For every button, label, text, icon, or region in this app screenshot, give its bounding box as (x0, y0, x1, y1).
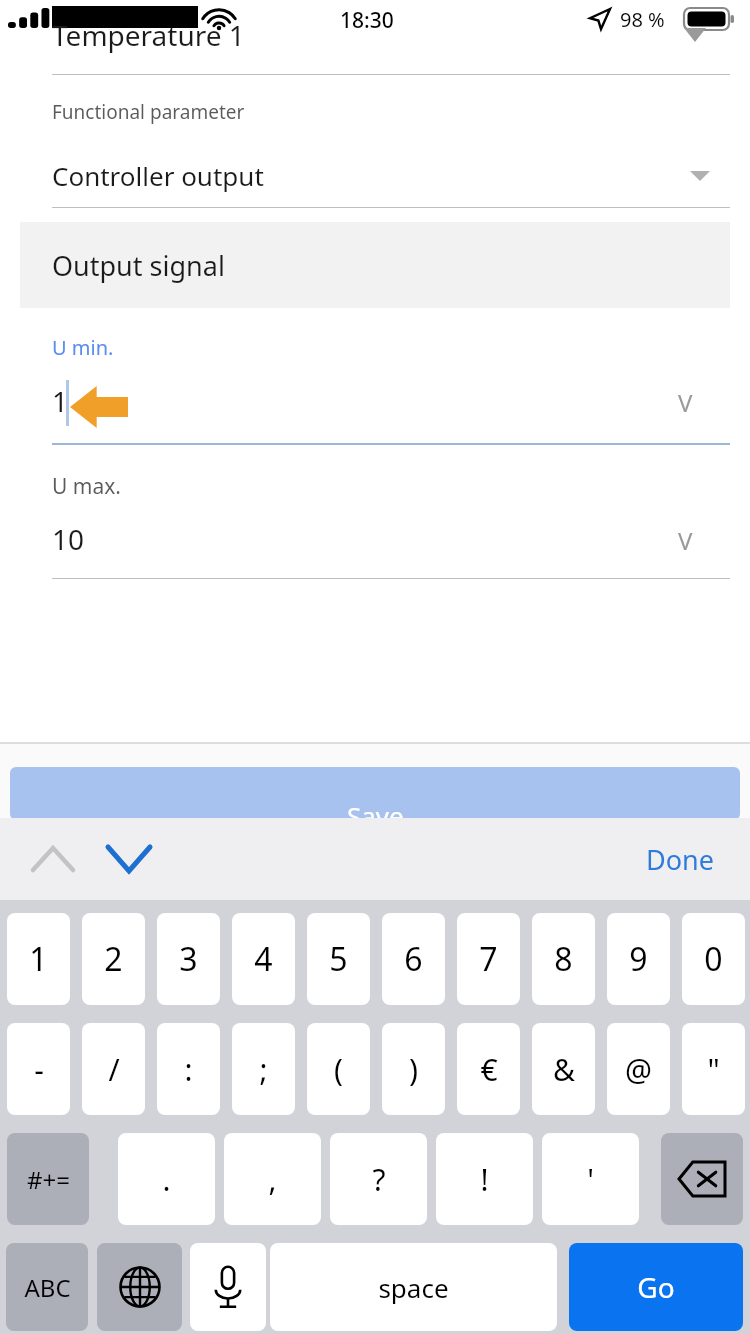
staticText: Done (646, 841, 714, 878)
staticText: 3 (179, 937, 198, 981)
button[interactable]: 9 (607, 913, 670, 1005)
button[interactable]: : (157, 1023, 220, 1115)
staticText: Output signal (52, 247, 225, 284)
button[interactable]: ; (232, 1023, 295, 1115)
button[interactable]: - (7, 1023, 70, 1115)
button[interactable]: #+= (7, 1133, 89, 1225)
button[interactable]: / (82, 1023, 145, 1115)
button[interactable]: 4 (232, 913, 295, 1005)
staticText: Controller output (52, 158, 264, 193)
staticText: 0 (704, 937, 723, 981)
button[interactable]: Go (569, 1243, 743, 1331)
staticText: - (34, 1049, 44, 1090)
staticText: 6 (404, 937, 423, 981)
button[interactable]: 5 (307, 913, 370, 1005)
staticText: V (678, 524, 693, 557)
staticText: " (707, 1049, 720, 1090)
button[interactable]: 6 (382, 913, 445, 1005)
button[interactable]: ) (382, 1023, 445, 1115)
button[interactable]: Previous field (18, 830, 88, 888)
staticText: Temperature 1 (52, 16, 245, 54)
staticText: 98 % (620, 6, 665, 33)
button[interactable]: ( (307, 1023, 370, 1115)
staticText: ) (409, 1049, 418, 1090)
staticText: 5 (329, 937, 348, 981)
staticText: 4 (254, 937, 273, 981)
button[interactable]: , (224, 1133, 321, 1225)
button[interactable]: @ (607, 1023, 670, 1115)
staticText: 9 (629, 937, 648, 981)
staticText: U max. (52, 472, 121, 501)
button[interactable]: Controller output (0, 150, 750, 200)
staticText: ? (372, 1159, 386, 1200)
button[interactable]: ABC (6, 1243, 88, 1331)
staticText: ( (334, 1049, 343, 1090)
staticText: & (553, 1049, 575, 1090)
button[interactable]: 2 (82, 913, 145, 1005)
button[interactable]: " (682, 1023, 745, 1115)
staticText: ! (480, 1159, 489, 1200)
button[interactable]: space (270, 1243, 557, 1331)
staticText: 10 (52, 520, 85, 558)
staticText: , (268, 1159, 277, 1200)
button[interactable]: 8 (532, 913, 595, 1005)
button[interactable]: Dictation (190, 1243, 266, 1331)
staticText: #+= (27, 1163, 70, 1196)
button[interactable]: 3 (157, 913, 220, 1005)
button[interactable]: Change keyboard language (97, 1243, 182, 1331)
staticText: space (378, 1270, 449, 1305)
staticText: U min. (52, 334, 114, 361)
staticText: / (108, 1049, 120, 1090)
staticText: Go (637, 1268, 675, 1306)
staticText: ABC (24, 1271, 71, 1304)
staticText: V (678, 386, 693, 419)
staticText: 2 (104, 937, 123, 981)
button[interactable]: 1 (0, 372, 750, 442)
staticText: Functional parameter (52, 99, 245, 125)
staticText: @ (625, 1049, 652, 1090)
staticText: 8 (554, 937, 573, 981)
button[interactable]: Save (10, 767, 740, 820)
button[interactable]: . (118, 1133, 215, 1225)
staticText: 18:30 (340, 6, 394, 35)
staticText: € (480, 1049, 498, 1090)
button[interactable]: 10 (0, 510, 750, 576)
button[interactable]: Next field (94, 830, 164, 888)
staticText: 7 (479, 937, 498, 981)
button[interactable]: ' (542, 1133, 639, 1225)
button[interactable]: Backspace (661, 1133, 743, 1225)
button[interactable]: € (457, 1023, 520, 1115)
staticText: ' (587, 1159, 594, 1200)
button[interactable]: & (532, 1023, 595, 1115)
button[interactable]: ! (436, 1133, 533, 1225)
button[interactable]: 0 (682, 913, 745, 1005)
staticText: 1 (29, 937, 48, 981)
button[interactable]: ? (330, 1133, 427, 1225)
staticText: : (184, 1049, 193, 1090)
staticText: Save (347, 798, 404, 820)
staticText: . (162, 1159, 171, 1200)
button[interactable]: Done (634, 831, 726, 888)
button[interactable]: 7 (457, 913, 520, 1005)
staticText: 1 (52, 382, 69, 420)
button[interactable]: 1 (7, 913, 70, 1005)
staticText: ; (259, 1049, 268, 1090)
